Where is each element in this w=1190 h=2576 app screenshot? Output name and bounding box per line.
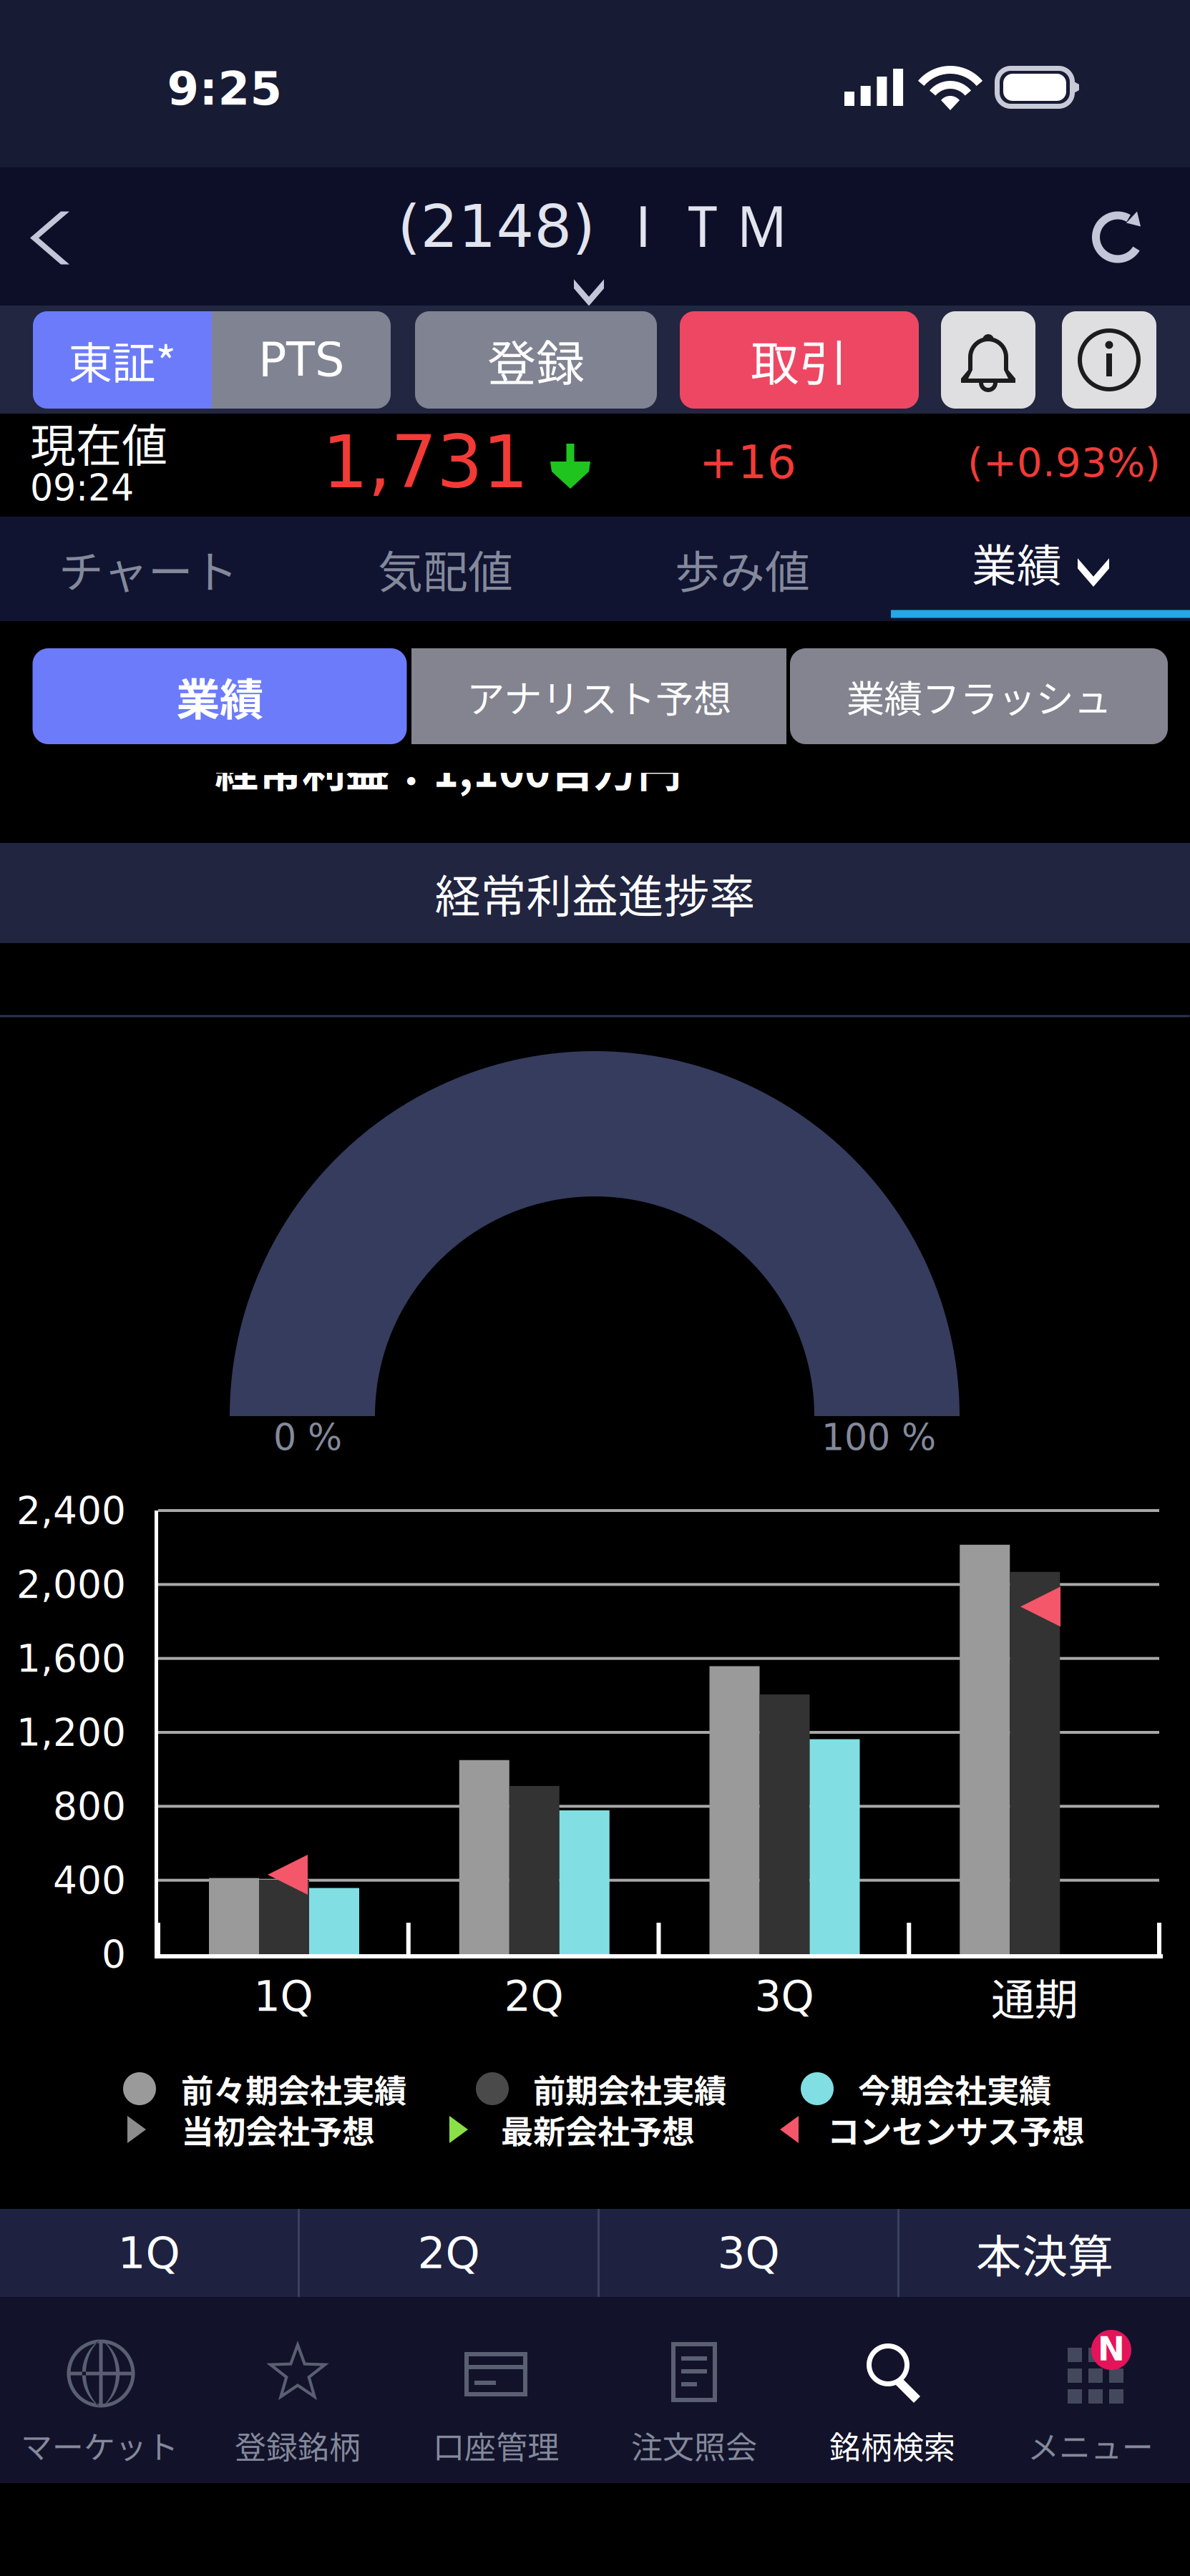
button[interactable]: Back bbox=[0, 168, 122, 306]
staticText: 2Q bbox=[418, 2227, 480, 2278]
staticText: N bbox=[1098, 2330, 1125, 2368]
button[interactable]: チャート bbox=[0, 517, 297, 621]
staticText: 2,000 bbox=[16, 1562, 126, 1607]
staticText: 400 bbox=[53, 1858, 126, 1902]
staticText: (+0.93%) bbox=[967, 439, 1161, 486]
staticText: コンセンサス予想 bbox=[827, 2106, 1084, 2153]
staticText: チャート bbox=[59, 536, 238, 601]
staticText: +16 bbox=[699, 436, 796, 489]
button[interactable]: 登録銘柄 bbox=[199, 2297, 397, 2483]
staticText: 09:24 bbox=[30, 467, 134, 509]
staticText: 業績 bbox=[176, 664, 263, 728]
staticText: 気配値 bbox=[378, 536, 513, 601]
staticText: 1Q bbox=[254, 1972, 313, 2021]
staticText: (2148) ＩＴＭ bbox=[398, 190, 792, 264]
staticText: 最新会社予想 bbox=[501, 2106, 694, 2153]
button[interactable]: 3Q bbox=[600, 2209, 897, 2297]
staticText: 0 % bbox=[273, 1416, 342, 1459]
button[interactable]: 1Q bbox=[0, 2209, 298, 2297]
staticText: 100 % bbox=[821, 1416, 936, 1459]
button[interactable]: 業績 bbox=[891, 517, 1190, 621]
staticText: 登録銘柄 bbox=[235, 2422, 361, 2468]
staticText: 経常利益進捗率 bbox=[435, 860, 755, 926]
staticText: 本決算 bbox=[976, 2220, 1113, 2286]
button[interactable]: 銘柄検索 bbox=[793, 2297, 991, 2483]
staticText: 当初会社予想 bbox=[181, 2106, 374, 2153]
staticText: アナリスト予想 bbox=[467, 669, 731, 724]
staticText: 2,400 bbox=[16, 1488, 126, 1533]
button[interactable]: 登録 bbox=[415, 311, 657, 409]
staticText: 0 bbox=[102, 1932, 126, 1976]
button[interactable]: 業績 bbox=[33, 648, 407, 744]
staticText: 今期会社実績 bbox=[858, 2065, 1051, 2112]
staticText: 前期会社実績 bbox=[533, 2065, 726, 2112]
button[interactable]: 取引 bbox=[680, 311, 919, 409]
staticText: メニュー bbox=[1028, 2422, 1154, 2468]
staticText: 銘柄検索 bbox=[829, 2422, 955, 2468]
staticText: 1Q bbox=[118, 2227, 180, 2278]
button[interactable]: (2148) ＩＴＭ bbox=[294, 168, 895, 306]
staticText: 口座管理 bbox=[433, 2422, 559, 2468]
staticText: 現在値 bbox=[30, 409, 167, 475]
staticText: PTS bbox=[258, 333, 344, 387]
button[interactable]: PTS bbox=[212, 311, 391, 409]
button[interactable]: 本決算 bbox=[899, 2209, 1190, 2297]
button[interactable]: N bbox=[991, 2297, 1190, 2483]
button[interactable]: 口座管理 bbox=[397, 2297, 595, 2483]
staticText: 業績フラッシュ bbox=[846, 669, 1112, 724]
staticText: 歩み値 bbox=[675, 536, 810, 601]
staticText: 1,731 bbox=[322, 420, 528, 504]
button[interactable]: 気配値 bbox=[297, 517, 594, 621]
button[interactable]: 業績フラッシュ bbox=[790, 648, 1168, 744]
staticText: 2Q bbox=[504, 1972, 564, 2021]
staticText: 9:25 bbox=[167, 62, 282, 115]
staticText: 800 bbox=[53, 1784, 126, 1829]
staticText: 前々期会社実績 bbox=[181, 2065, 406, 2112]
staticText: 通期 bbox=[991, 1965, 1078, 2028]
staticText: 経常利益：1,100百万円 bbox=[215, 736, 681, 800]
staticText: 取引 bbox=[751, 325, 848, 395]
staticText: 注文照会 bbox=[631, 2422, 757, 2468]
button[interactable]: アナリスト予想 bbox=[411, 648, 786, 744]
staticText: 3Q bbox=[755, 1972, 814, 2021]
staticText: 1,200 bbox=[16, 1710, 126, 1755]
button[interactable]: 2Q bbox=[300, 2209, 598, 2297]
button[interactable]: Information bbox=[1062, 311, 1156, 409]
button[interactable]: Refresh bbox=[1058, 168, 1179, 306]
button[interactable]: マーケット bbox=[0, 2297, 199, 2483]
staticText: 東証* bbox=[68, 328, 176, 392]
staticText: 登録 bbox=[487, 325, 585, 395]
staticText: 3Q bbox=[717, 2227, 780, 2278]
staticText: 業績 bbox=[972, 530, 1062, 595]
button[interactable]: Alerts bbox=[941, 311, 1035, 409]
staticText: マーケット bbox=[21, 2422, 178, 2468]
button[interactable]: 東証* bbox=[33, 311, 212, 409]
button[interactable]: 歩み値 bbox=[594, 517, 891, 621]
button[interactable]: 注文照会 bbox=[595, 2297, 793, 2483]
staticText: 1,600 bbox=[16, 1636, 126, 1681]
